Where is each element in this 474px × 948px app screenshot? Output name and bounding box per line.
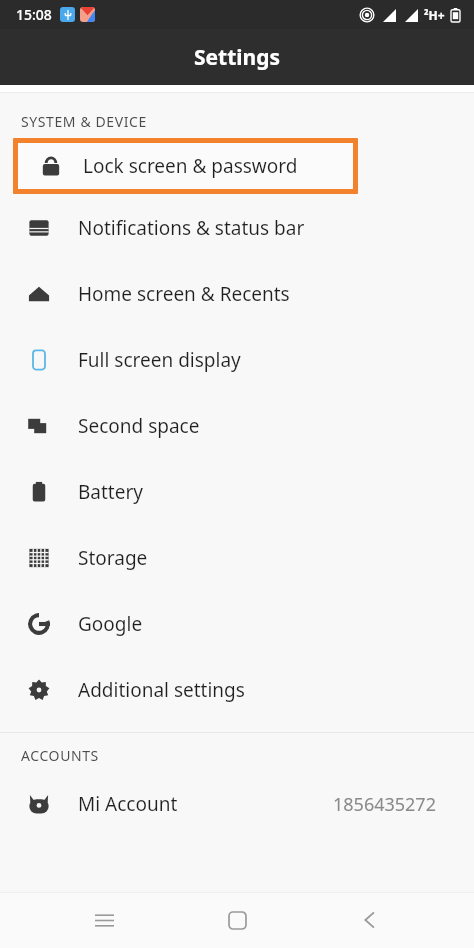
staticText: 15:08 xyxy=(16,5,52,24)
button[interactable]: Mi Account xyxy=(0,771,474,837)
staticText: Additional settings xyxy=(78,677,245,703)
staticText: Notifications & status bar xyxy=(78,215,305,241)
button[interactable]: Full screen display xyxy=(0,327,474,393)
staticText: Battery xyxy=(78,479,143,505)
button[interactable]: Notifications & status bar xyxy=(0,195,474,261)
button[interactable]: Additional settings xyxy=(0,657,474,723)
staticText: Mi Account xyxy=(78,791,178,817)
button[interactable]: Battery xyxy=(0,459,474,525)
staticText: Settings xyxy=(194,43,281,72)
staticText: SYSTEM & DEVICE xyxy=(21,112,147,131)
staticText: Second space xyxy=(78,413,200,439)
staticText: Home screen & Recents xyxy=(78,281,290,307)
button[interactable]: Recents xyxy=(75,892,133,948)
button[interactable]: Back xyxy=(341,892,399,948)
button[interactable]: Second space xyxy=(0,393,474,459)
staticText: Storage xyxy=(78,545,148,571)
button[interactable]: Lock screen & password xyxy=(18,143,353,189)
staticText: ACCOUNTS xyxy=(21,746,99,765)
staticText: Google xyxy=(78,611,143,637)
staticText: Lock screen & password xyxy=(83,153,298,179)
button[interactable]: Storage xyxy=(0,525,474,591)
button[interactable]: Google xyxy=(0,591,474,657)
staticText: ²H+ xyxy=(424,7,445,23)
staticText: 1856435272 xyxy=(333,792,436,817)
staticText: Full screen display xyxy=(78,347,241,373)
button[interactable]: Home screen & Recents xyxy=(0,261,474,327)
button[interactable]: Home xyxy=(208,892,266,948)
